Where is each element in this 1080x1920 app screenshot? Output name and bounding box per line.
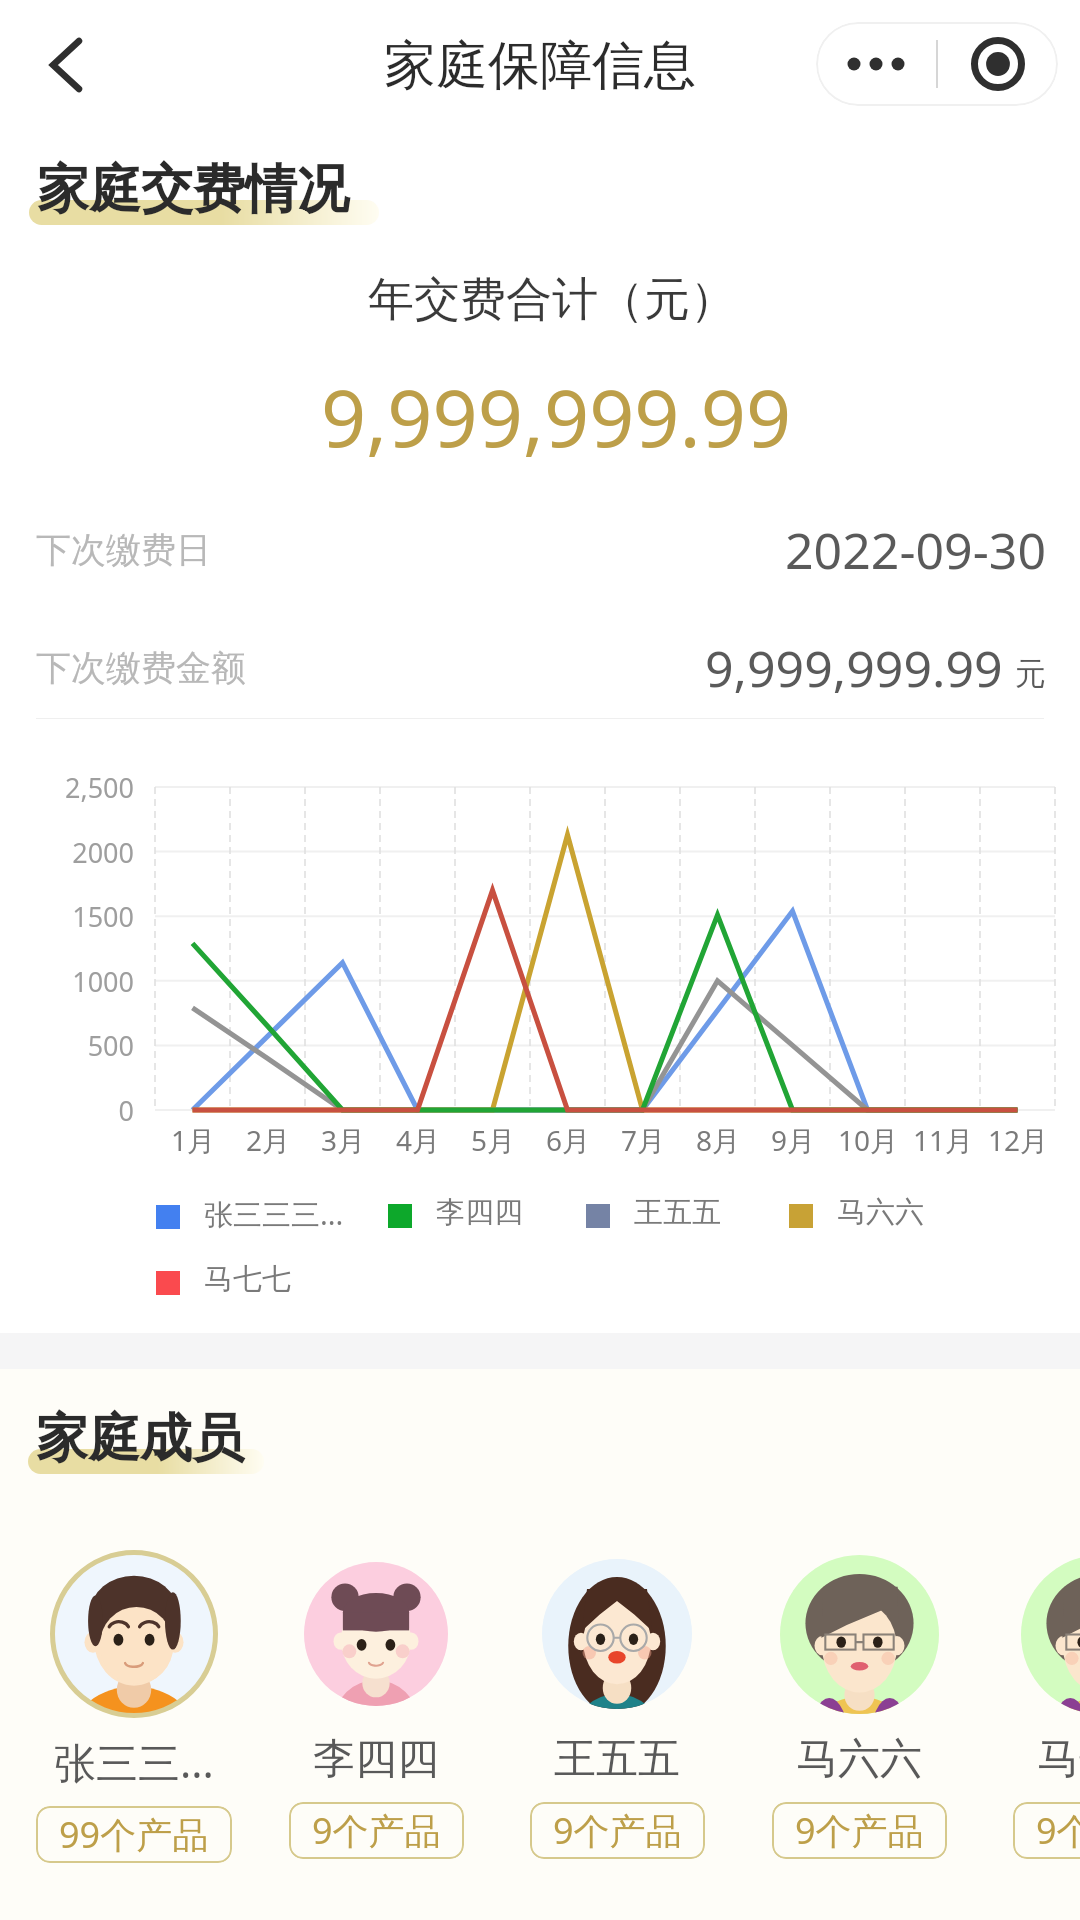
staticText: 12月 <box>963 1121 1073 1159</box>
staticText: 李四四 <box>313 1733 439 1786</box>
staticText: 99个产品 <box>59 1810 209 1859</box>
staticText: 9,999,999.99 <box>16 363 1080 471</box>
staticText: 7月 <box>588 1121 698 1159</box>
staticText: 马六六 <box>837 1194 924 1231</box>
staticText: 下次缴费金额 <box>36 646 246 690</box>
staticText: 年交费合计（元） <box>12 271 1080 329</box>
button[interactable]: 张三三... <box>24 1548 244 1863</box>
staticText: 10月 <box>813 1121 923 1159</box>
staticText: 马七七 <box>1037 1733 1080 1786</box>
button[interactable]: Back <box>24 23 108 107</box>
button[interactable]: 马六六 <box>789 1197 924 1234</box>
staticText: 1000 <box>0 963 134 1000</box>
staticText: 5月 <box>438 1121 548 1159</box>
staticText: 2月 <box>213 1121 323 1159</box>
staticText: 9月 <box>738 1121 848 1159</box>
staticText: 王五五 <box>634 1194 721 1231</box>
staticText: 2022-09-30 <box>785 516 1046 584</box>
button[interactable]: 马六六 <box>749 1548 969 1859</box>
button[interactable]: 李四四 <box>266 1548 486 1859</box>
staticText: 8月 <box>663 1121 773 1159</box>
button[interactable]: 李四四 <box>388 1197 523 1234</box>
button[interactable]: 马七七 <box>156 1264 291 1301</box>
staticText: 元 <box>1015 654 1046 693</box>
staticText: 2,500 <box>0 769 134 806</box>
staticText: 马六六 <box>796 1733 922 1786</box>
staticText: 1500 <box>0 898 134 935</box>
button[interactable]: 下次缴费日 <box>0 500 1080 600</box>
button[interactable]: 王五五 <box>586 1197 721 1234</box>
staticText: 2000 <box>0 834 134 871</box>
staticText: 3月 <box>288 1121 398 1159</box>
staticText: 家庭交费情况 <box>37 157 349 223</box>
button[interactable]: More <box>816 22 936 106</box>
staticText: 张三三三... <box>204 1194 344 1234</box>
staticText: 张三三... <box>54 1733 214 1790</box>
staticText: 1月 <box>138 1121 248 1159</box>
button[interactable]: 王五五 <box>507 1548 727 1859</box>
staticText: 9个产品 <box>1036 1806 1080 1855</box>
button[interactable]: 张三三三... <box>156 1197 344 1237</box>
staticText: 9,999,999.99 <box>705 634 1003 702</box>
staticText: 9个产品 <box>553 1806 682 1855</box>
staticText: 4月 <box>363 1121 473 1159</box>
button[interactable]: 马七七 <box>990 1548 1080 1859</box>
staticText: 下次缴费日 <box>36 528 211 572</box>
button[interactable]: 下次缴费金额 <box>0 618 1080 718</box>
staticText: 0 <box>0 1092 134 1129</box>
staticText: 6月 <box>513 1121 623 1159</box>
staticText: 家庭保障信息 <box>384 33 696 99</box>
staticText: 马七七 <box>204 1261 291 1298</box>
button[interactable]: Close mini program <box>938 22 1058 106</box>
staticText: 家庭成员 <box>36 1406 244 1472</box>
staticText: 500 <box>0 1027 134 1064</box>
staticText: 9个产品 <box>312 1806 441 1855</box>
staticText: 11月 <box>888 1121 998 1159</box>
staticText: 9个产品 <box>795 1806 924 1855</box>
staticText: 王五五 <box>554 1733 680 1786</box>
staticText: 李四四 <box>436 1194 523 1231</box>
